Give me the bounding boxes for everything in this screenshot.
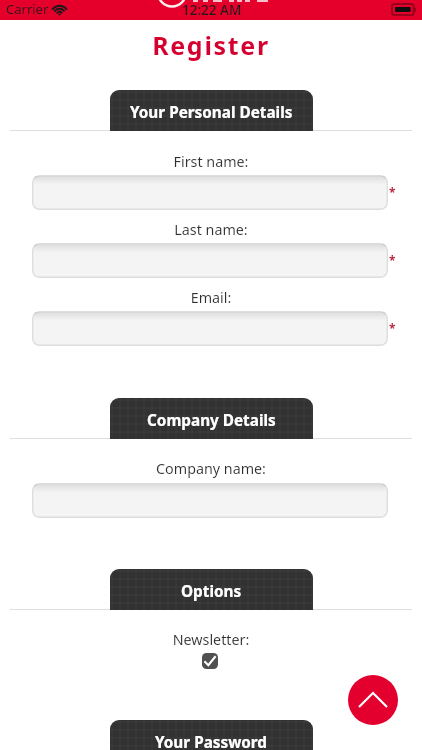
button[interactable] — [32, 243, 388, 278]
button[interactable] — [32, 311, 388, 346]
button[interactable]: Company Details — [110, 398, 313, 439]
staticText: Your Password — [155, 732, 268, 750]
staticText: Email: — [0, 288, 422, 307]
staticText: Newsletter: — [0, 630, 422, 649]
staticText: Company name: — [0, 459, 422, 478]
staticText: * — [389, 184, 396, 200]
button[interactable] — [32, 483, 388, 518]
staticText: 12:22 AM — [182, 1, 242, 19]
staticText: Options — [181, 581, 242, 602]
button[interactable] — [32, 175, 388, 210]
button[interactable]: Your Password — [110, 720, 313, 750]
button[interactable]: Newsletter checkbox — [202, 653, 218, 669]
staticText: * — [389, 252, 396, 268]
staticText: First name: — [0, 152, 422, 171]
staticText: Carrier — [6, 0, 49, 18]
staticText: Company Details — [147, 410, 276, 431]
button[interactable]: Options — [110, 569, 313, 610]
button[interactable]: Scroll to top — [348, 675, 398, 725]
staticText: * — [389, 320, 396, 336]
staticText: Your Personal Details — [130, 102, 293, 123]
button[interactable]: Your Personal Details — [110, 90, 313, 131]
staticText: Register — [0, 28, 422, 62]
staticText: Last name: — [0, 220, 422, 239]
